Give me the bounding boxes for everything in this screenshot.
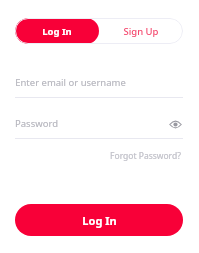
staticText: Sign Up: [123, 25, 159, 38]
button[interactable]: Password: [15, 115, 183, 139]
button[interactable]: Enter email or username: [15, 74, 183, 98]
button[interactable]: Sign Up: [99, 18, 183, 44]
button[interactable]: Log In: [15, 18, 99, 44]
staticText: Log In: [82, 213, 117, 228]
staticText: Password: [15, 117, 58, 130]
staticText: Log In: [42, 25, 72, 38]
button[interactable]: Forgot Password?: [108, 148, 183, 164]
button[interactable]: Log In: [15, 204, 183, 236]
staticText: Enter email or username: [15, 76, 126, 89]
button[interactable]: Show password: [167, 116, 183, 132]
staticText: Forgot Password?: [110, 150, 181, 162]
